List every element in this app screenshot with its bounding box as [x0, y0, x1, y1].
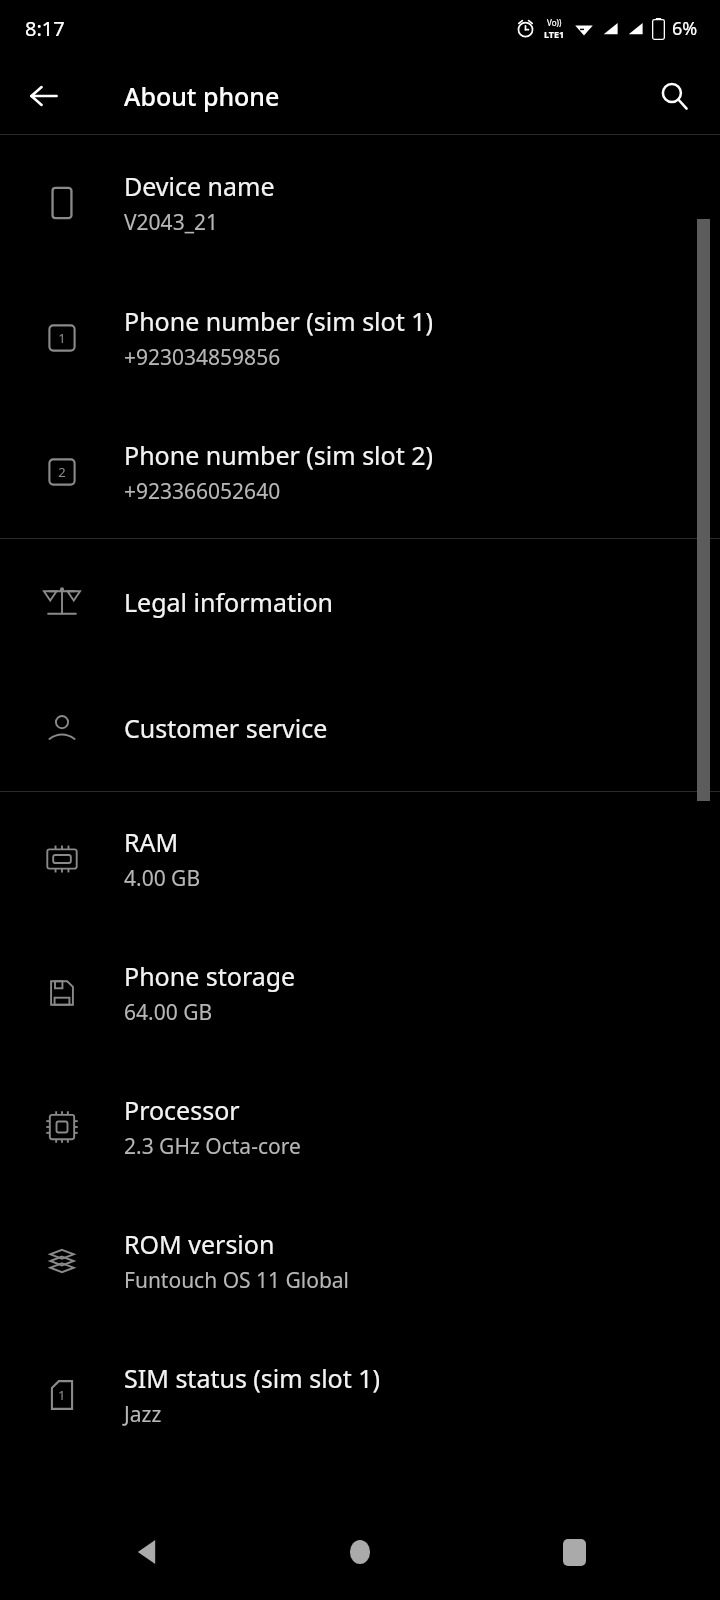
staticText: SIM status (sim slot 1) [124, 1361, 381, 1395]
button[interactable]: Search [642, 64, 706, 128]
staticText: 64.00 GB [124, 998, 213, 1027]
staticText: LTE1 [544, 28, 565, 40]
staticText: Processor [124, 1093, 240, 1127]
staticText: 8:17 [25, 15, 65, 42]
staticText: Device name [124, 169, 275, 203]
staticText: +923366052640 [124, 477, 281, 506]
staticText: ROM version [124, 1227, 275, 1261]
staticText: +923034859856 [124, 343, 281, 372]
staticText: About phone [124, 79, 280, 113]
button[interactable]: 1 [0, 1328, 720, 1462]
staticText: Jazz [124, 1400, 162, 1429]
button[interactable]: Customer service [0, 665, 720, 791]
staticText: 6% [672, 16, 698, 41]
staticText: 1 [58, 1386, 66, 1404]
button[interactable]: 1 [0, 270, 720, 405]
button[interactable]: Home [322, 1514, 398, 1590]
staticText: Funtouch OS 11 Global [124, 1266, 350, 1295]
button[interactable]: Legal information [0, 539, 720, 665]
staticText: 1 [58, 329, 66, 347]
staticText: Phone number (sim slot 2) [124, 438, 434, 472]
button[interactable]: RAM [0, 792, 720, 926]
button[interactable]: ROM version [0, 1194, 720, 1328]
button[interactable]: Back [12, 64, 76, 128]
button[interactable]: Back [110, 1514, 186, 1590]
button[interactable]: 2 [0, 405, 720, 538]
button[interactable]: Recent apps [536, 1514, 612, 1590]
button[interactable]: Processor [0, 1060, 720, 1194]
staticText: 2 [58, 463, 66, 481]
staticText: V2043_21 [124, 208, 218, 237]
button[interactable]: Phone storage [0, 926, 720, 1060]
staticText: Legal information [124, 585, 333, 619]
staticText: Vo)) [547, 17, 562, 28]
staticText: 4.00 GB [124, 864, 201, 893]
staticText: Customer service [124, 711, 328, 745]
staticText: 2.3 GHz Octa-core [124, 1132, 301, 1161]
button[interactable]: Device name [0, 135, 720, 270]
staticText: Phone storage [124, 959, 296, 993]
staticText: Phone number (sim slot 1) [124, 304, 434, 338]
staticText: RAM [124, 825, 179, 859]
